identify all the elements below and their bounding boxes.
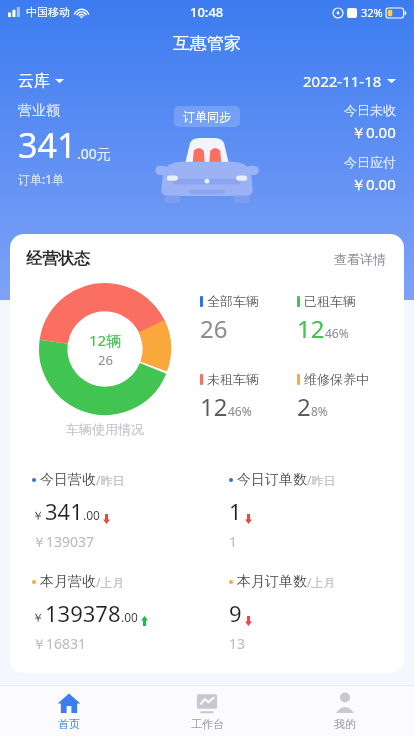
staticText: ￥ [32,610,44,625]
staticText: ￥0.00 [351,174,396,194]
staticText: 经营状态 [26,249,90,269]
button[interactable]: 首页 [0,686,138,736]
other: 工作台 [195,691,219,715]
staticText: 互惠管家 [173,33,241,54]
staticText: 1 [229,496,242,526]
staticText: 8% [311,403,328,419]
staticText: 46% [228,403,252,419]
button[interactable]: 今日订单数 [207,471,404,551]
button[interactable]: 查看详情 [330,247,390,271]
staticText: 今日未收 [344,102,396,118]
staticText: 今日订单数 [237,471,307,489]
staticText: 今日营收 [40,471,96,489]
staticText: 2022-11-18 [303,71,382,91]
staticText: 139378 [45,598,121,628]
staticText: 云库 [18,71,50,91]
staticText: 查看详情 [334,251,386,267]
staticText: 中国移动 [26,5,70,19]
staticText: 26 [200,312,228,345]
other: 首页 [57,691,81,715]
staticText: 26 [98,351,113,369]
staticText: 我的 [334,717,356,731]
staticText: /昨日 [307,472,336,488]
staticText: ￥139037 [32,532,95,551]
button[interactable]: 未租车辆 [200,371,297,423]
staticText: 营业额 [18,102,60,120]
staticText: ￥ [32,508,44,523]
staticText: .00 [83,507,100,523]
button[interactable]: 本月订单数 [207,573,404,653]
staticText: 全部车辆 [207,293,259,309]
button[interactable]: 2022-11-18 [303,67,396,95]
staticText: 今日应付 [344,154,396,170]
staticText: 2 [297,390,311,423]
staticText: 12辆 [89,330,122,350]
other: 我的 [333,691,357,715]
staticText: 订单同步 [183,109,231,124]
staticText: 341 [18,122,77,168]
staticText: 32% [361,5,383,20]
button[interactable]: 云库 [18,67,64,95]
staticText: 订单:1单 [18,171,65,187]
staticText: 10:48 [190,3,224,21]
staticText: 1 [229,532,238,551]
button[interactable]: 我的 [276,686,414,736]
staticText: ￥0.00 [351,122,396,142]
button[interactable]: 已租车辆 [297,293,394,345]
staticText: /上月 [307,574,336,590]
button[interactable]: 今日营收 [10,471,207,551]
staticText: 本月营收 [40,573,96,591]
button[interactable]: 维修保养中 [297,371,394,423]
staticText: 未租车辆 [207,371,259,387]
staticText: 46% [325,325,349,341]
staticText: /上月 [96,574,125,590]
staticText: /昨日 [96,472,125,488]
staticText: 工作台 [191,717,224,731]
staticText: 9 [229,598,242,628]
staticText: 本月订单数 [237,573,307,591]
staticText: 维修保养中 [304,371,369,387]
button[interactable]: 工作台 [138,686,276,736]
staticText: .00 [121,609,138,625]
staticText: ￥16831 [32,634,87,653]
staticText: 341 [45,496,83,526]
button[interactable]: 本月营收 [10,573,207,653]
staticText: .00元 [77,144,111,163]
button[interactable]: 全部车辆 [200,293,297,345]
staticText: 车辆使用情况 [66,421,144,437]
staticText: 首页 [58,717,80,731]
staticText: 12 [297,312,325,345]
staticText: 13 [229,634,246,653]
staticText: 已租车辆 [304,293,356,309]
staticText: 12 [200,390,228,423]
